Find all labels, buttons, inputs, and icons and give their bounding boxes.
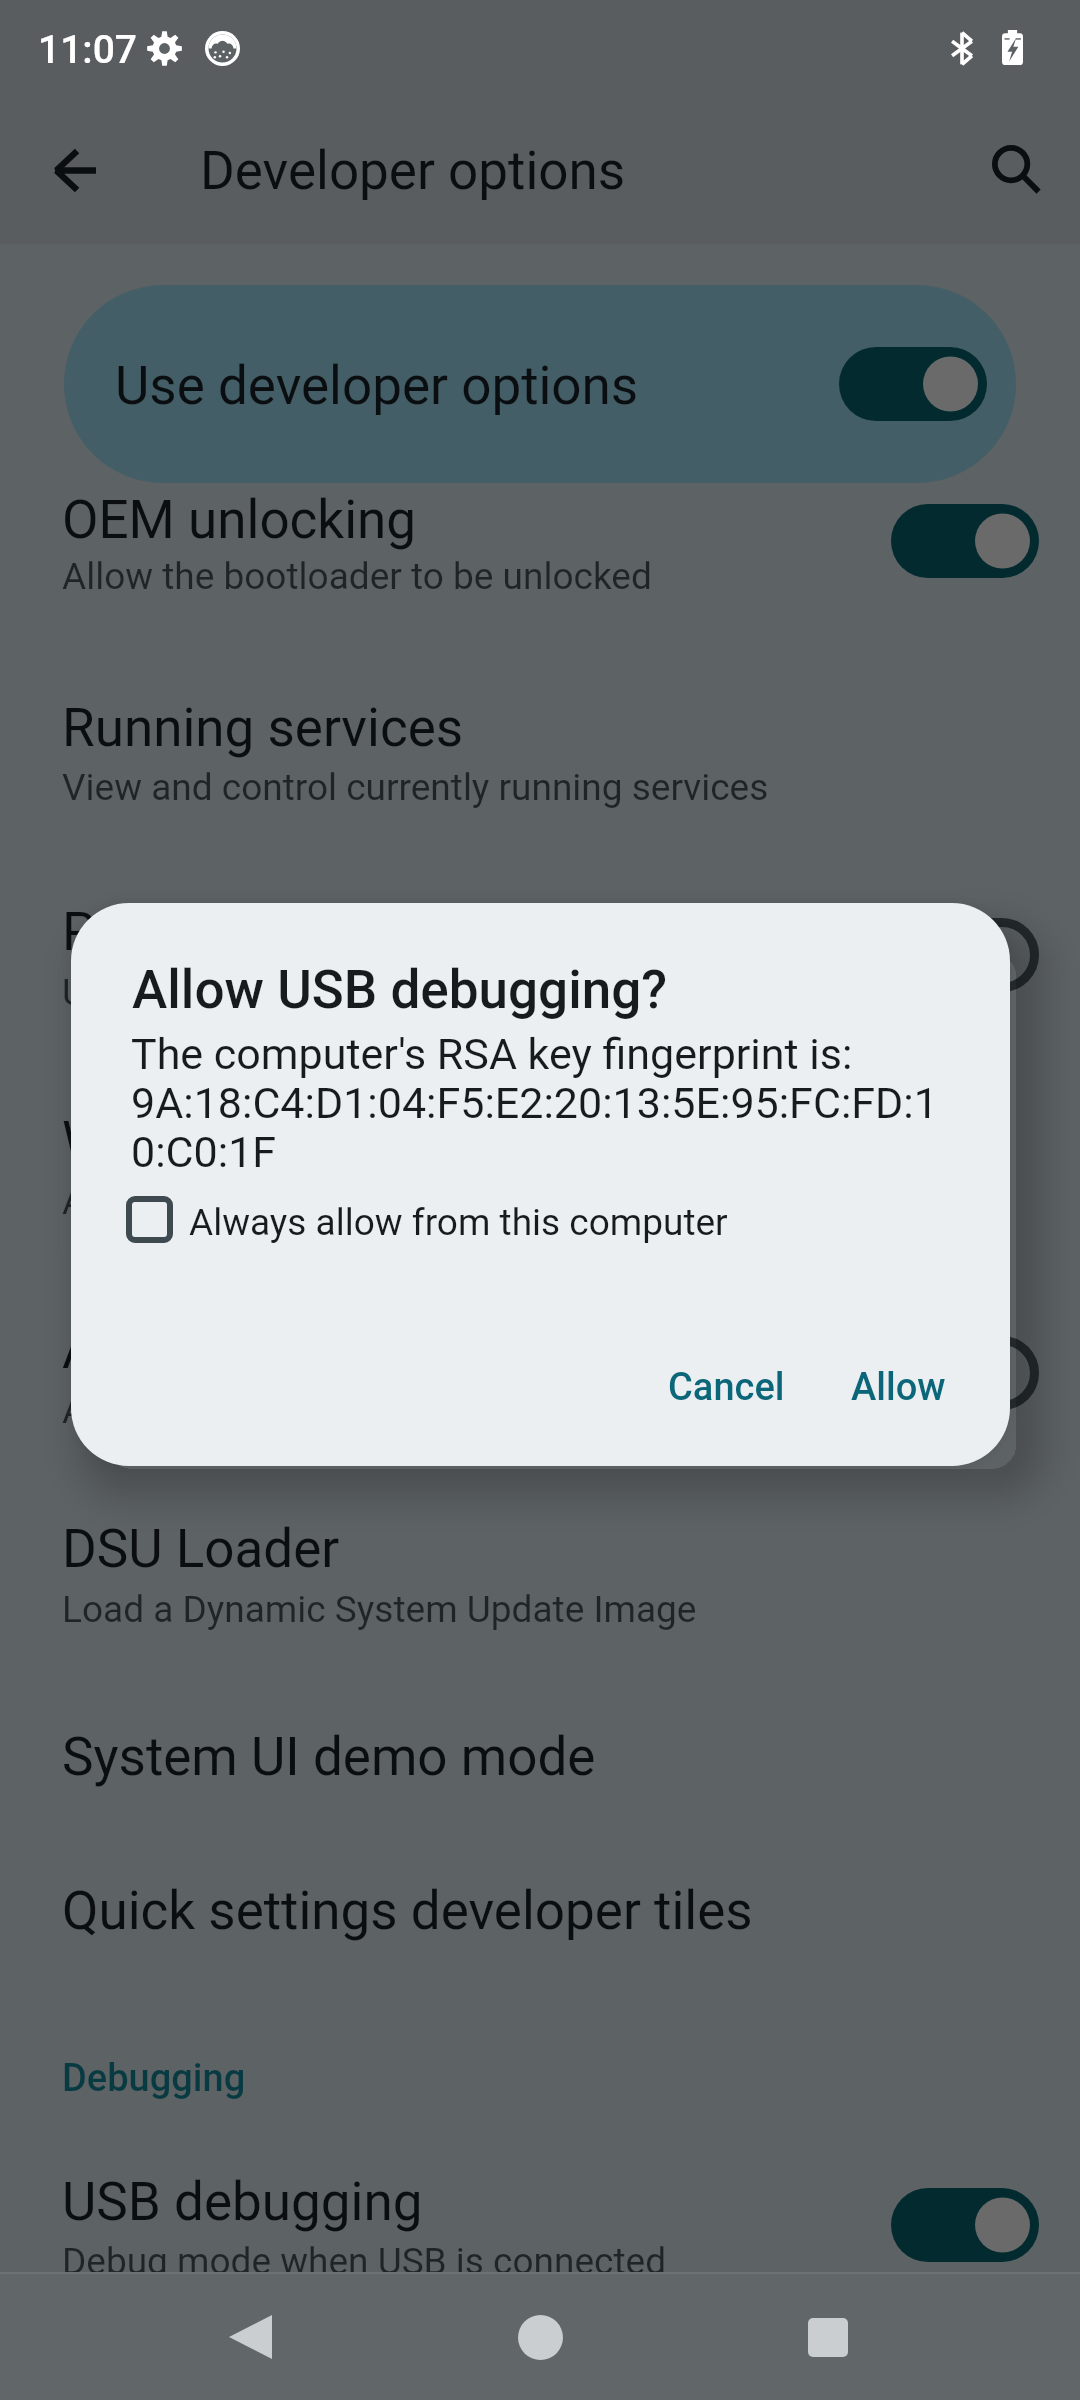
button[interactable]: Allow [827, 1341, 970, 1434]
staticText: Cancel [668, 1365, 785, 1410]
button[interactable]: Use developer options [64, 285, 1016, 483]
staticText: Allow [851, 1365, 946, 1410]
staticText: Automatic system updates [62, 1319, 695, 1381]
button[interactable]: Quick settings developer tiles [0, 1840, 1080, 1960]
button[interactable]: OEM unlocking [0, 459, 1080, 605]
staticText: System UI demo mode [62, 1726, 596, 1788]
staticText: Apply update on restart [62, 1389, 446, 1432]
staticText: Use developer options [115, 355, 639, 417]
staticText: Debugging [62, 2056, 246, 2101]
button[interactable]: Webview implementation [0, 1080, 1080, 1230]
staticText: OEM unlocking [62, 489, 417, 551]
button[interactable]: USB debugging [0, 2141, 1080, 2290]
button[interactable]: Running services [0, 667, 1080, 816]
staticText: Allow the bootloader to be unlocked [62, 555, 652, 598]
staticText: Developer options [200, 140, 626, 202]
staticText: Android System WebView [62, 1180, 485, 1223]
staticText: Load a Dynamic System Update Image [62, 1588, 697, 1631]
button[interactable]: Automatic system updates [0, 1289, 1080, 1439]
staticText: View and control currently running servi… [62, 766, 769, 809]
button[interactable]: Back [170, 2274, 330, 2400]
staticText: Webview implementation [62, 1110, 656, 1172]
staticText: Allow USB debugging? [132, 959, 668, 1021]
button[interactable]: Picture color mode [0, 871, 1080, 1021]
button[interactable]: Recent apps [748, 2274, 908, 2400]
button[interactable]: DSU Loader [0, 1488, 1080, 1638]
button[interactable]: Always allow from this computer [111, 1184, 748, 1255]
staticText: USB debugging [62, 2171, 423, 2233]
staticText: Running services [62, 697, 464, 759]
staticText: Picture color mode [62, 901, 509, 963]
staticText: Use sRGB [62, 971, 225, 1014]
staticText: Quick settings developer tiles [62, 1880, 753, 1942]
button[interactable]: Home [460, 2274, 620, 2400]
staticText: 11:07 [38, 27, 138, 73]
staticText: DSU Loader [62, 1518, 340, 1580]
staticText: Debug mode when USB is connected [62, 2240, 667, 2283]
button[interactable]: Navigate up [2, 97, 148, 243]
button[interactable]: Cancel [644, 1341, 809, 1434]
button[interactable]: Search [945, 96, 1080, 242]
staticText: The computer's RSA key fingerprint is: 9… [131, 1029, 938, 1177]
staticText: Always allow from this computer [189, 1201, 728, 1244]
button[interactable]: System UI demo mode [0, 1686, 1080, 1806]
